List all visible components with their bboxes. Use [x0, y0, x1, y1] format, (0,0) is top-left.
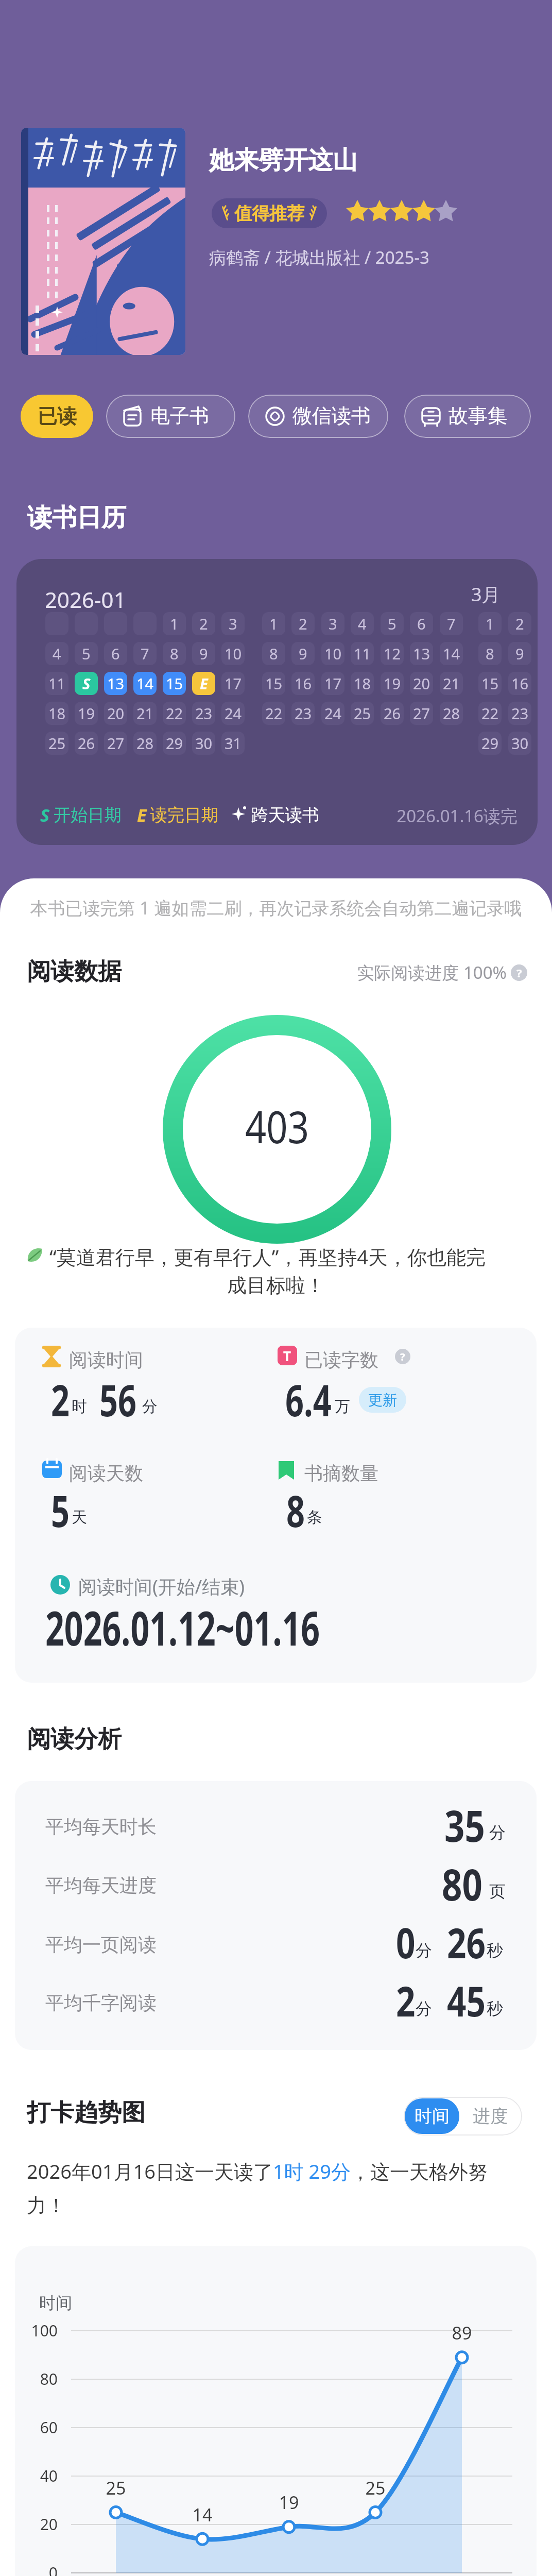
staticText: 已读字数: [304, 1348, 378, 1371]
staticText: 19: [78, 703, 95, 723]
staticText: 22: [166, 703, 183, 723]
staticText: ?: [400, 1350, 405, 1364]
staticText: 18: [48, 703, 66, 723]
button[interactable]: [248, 395, 388, 438]
staticText: T: [283, 1347, 291, 1365]
staticText: 2: [396, 1972, 415, 2028]
staticText: 平均每天进度: [45, 1874, 157, 1897]
staticText: 跨天读书: [251, 804, 319, 826]
staticText: 14: [177, 2503, 228, 2527]
staticText: 23: [511, 703, 529, 723]
staticText: 时: [72, 1397, 87, 1416]
staticText: 0: [21, 2562, 58, 2576]
staticText: 开始日期: [54, 804, 122, 826]
staticText: 已读: [38, 404, 77, 429]
staticText: 89: [436, 2321, 488, 2345]
staticText: 24: [225, 703, 242, 723]
staticText: 80: [442, 1854, 483, 1913]
staticText: 2026.01.16读完: [363, 804, 517, 827]
staticText: 15: [481, 673, 499, 693]
staticText: 分: [142, 1397, 158, 1416]
staticText: 19: [263, 2490, 315, 2514]
staticText: 11: [48, 673, 66, 693]
staticText: 2026年01月16日这一天读了1时 29分，这一天格外努: [27, 2158, 488, 2184]
staticText: 22: [265, 703, 283, 723]
staticText: 7: [447, 614, 456, 634]
staticText: 80: [21, 2368, 58, 2389]
button[interactable]: ?: [511, 964, 527, 981]
staticText: 1: [170, 614, 179, 634]
staticText: S: [40, 803, 50, 827]
staticText: 阅读数据: [27, 957, 122, 987]
staticText: 56: [99, 1370, 137, 1429]
staticText: 2026-01: [45, 585, 126, 614]
staticText: 21: [443, 673, 460, 693]
staticText: 27: [107, 733, 125, 753]
staticText: 20: [107, 703, 125, 723]
staticText: 22: [481, 703, 499, 723]
staticText: 平均每天时长: [45, 1815, 157, 1838]
staticText: 40: [21, 2465, 58, 2486]
staticText: 阅读分析: [27, 1724, 122, 1754]
staticText: 28: [443, 703, 460, 723]
staticText: 2: [299, 614, 307, 634]
staticText: 分: [416, 1940, 432, 1961]
staticText: 平均千字阅读: [45, 1991, 157, 2014]
staticText: 19: [384, 673, 401, 693]
staticText: 100: [21, 2320, 58, 2341]
staticText: 12: [384, 643, 401, 664]
staticText: 值得推荐: [234, 202, 304, 225]
staticText: 17: [324, 673, 342, 693]
staticText: 7: [141, 643, 149, 664]
staticText: 17: [225, 673, 242, 693]
staticText: 8: [286, 1481, 305, 1539]
staticText: 45: [447, 1972, 486, 2028]
staticText: 分: [489, 1822, 506, 1843]
button[interactable]: 进度: [459, 2098, 521, 2134]
button[interactable]: ?: [395, 1349, 410, 1364]
staticText: 2: [199, 614, 208, 634]
staticText: 23: [295, 703, 312, 723]
staticText: 10: [225, 643, 242, 664]
staticText: 26: [384, 703, 401, 723]
staticText: 29: [481, 733, 499, 753]
staticText: 书摘数量: [304, 1462, 378, 1485]
staticText: 6: [417, 614, 426, 634]
staticText: 25: [90, 2476, 142, 2500]
staticText: 27: [413, 703, 430, 723]
staticText: 15: [265, 673, 283, 693]
staticText: 力！: [27, 2193, 66, 2218]
staticText: ?: [516, 965, 522, 980]
button[interactable]: 值得推荐: [212, 198, 327, 228]
staticText: 2: [515, 614, 524, 634]
staticText: 30: [511, 733, 529, 753]
staticText: 读完日期: [150, 804, 218, 826]
staticText: 26: [447, 1914, 486, 1970]
staticText: 3月: [471, 582, 501, 607]
staticText: 5: [388, 614, 396, 634]
staticText: 60: [21, 2417, 58, 2438]
staticText: 25: [48, 733, 66, 753]
staticText: 10: [324, 643, 342, 664]
staticText: E: [200, 673, 208, 693]
staticText: 6: [111, 643, 120, 664]
staticText: 2: [51, 1370, 70, 1429]
staticText: 13: [107, 673, 125, 693]
button[interactable]: [106, 395, 235, 438]
staticText: 13: [413, 643, 430, 664]
staticText: 时间: [39, 2293, 72, 2313]
staticText: 26: [78, 733, 95, 753]
button[interactable]: 已读: [21, 395, 93, 438]
button[interactable]: 更新: [359, 1387, 406, 1413]
staticText: 故事集: [449, 403, 507, 428]
button[interactable]: 时间: [405, 2098, 459, 2134]
staticText: 21: [136, 703, 154, 723]
button[interactable]: [404, 395, 531, 438]
staticText: 6.4: [285, 1370, 332, 1429]
staticText: 5: [82, 643, 91, 664]
staticText: 23: [195, 703, 213, 723]
staticText: 1: [486, 614, 494, 634]
staticText: 25: [354, 703, 371, 723]
staticText: 8: [269, 643, 278, 664]
staticText: 35: [444, 1795, 485, 1854]
